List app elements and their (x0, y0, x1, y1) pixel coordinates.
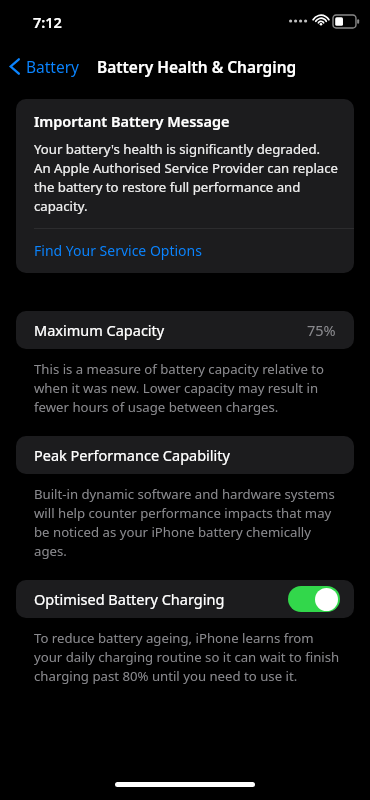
staticText: Battery Health & Charging (97, 56, 297, 77)
staticText: To reduce battery ageing, iPhone learns … (34, 629, 342, 685)
staticText: This is a measure of battery capacity re… (34, 360, 342, 416)
button[interactable]: Peak Performance Capability (16, 436, 354, 474)
staticText: 7:12 (33, 12, 62, 32)
staticText: Optimised Battery Charging (34, 589, 225, 609)
staticText: 75% (307, 320, 336, 340)
staticText: Maximum Capacity (34, 320, 165, 340)
staticText: Battery (26, 56, 80, 77)
staticText: Your battery's health is significantly d… (34, 140, 338, 215)
staticText: Find Your Service Options (34, 241, 202, 260)
button[interactable]: Maximum Capacity (16, 311, 354, 349)
staticText: Built-in dynamic software and hardware s… (34, 485, 342, 560)
button[interactable]: Battery (0, 52, 86, 81)
button[interactable]: Optimised Battery Charging toggle, on (288, 586, 340, 612)
button[interactable]: Optimised Battery Charging (16, 580, 354, 618)
staticText: Important Battery Message (34, 111, 230, 131)
staticText: Peak Performance Capability (34, 445, 230, 465)
button[interactable]: Find Your Service Options (16, 229, 354, 273)
